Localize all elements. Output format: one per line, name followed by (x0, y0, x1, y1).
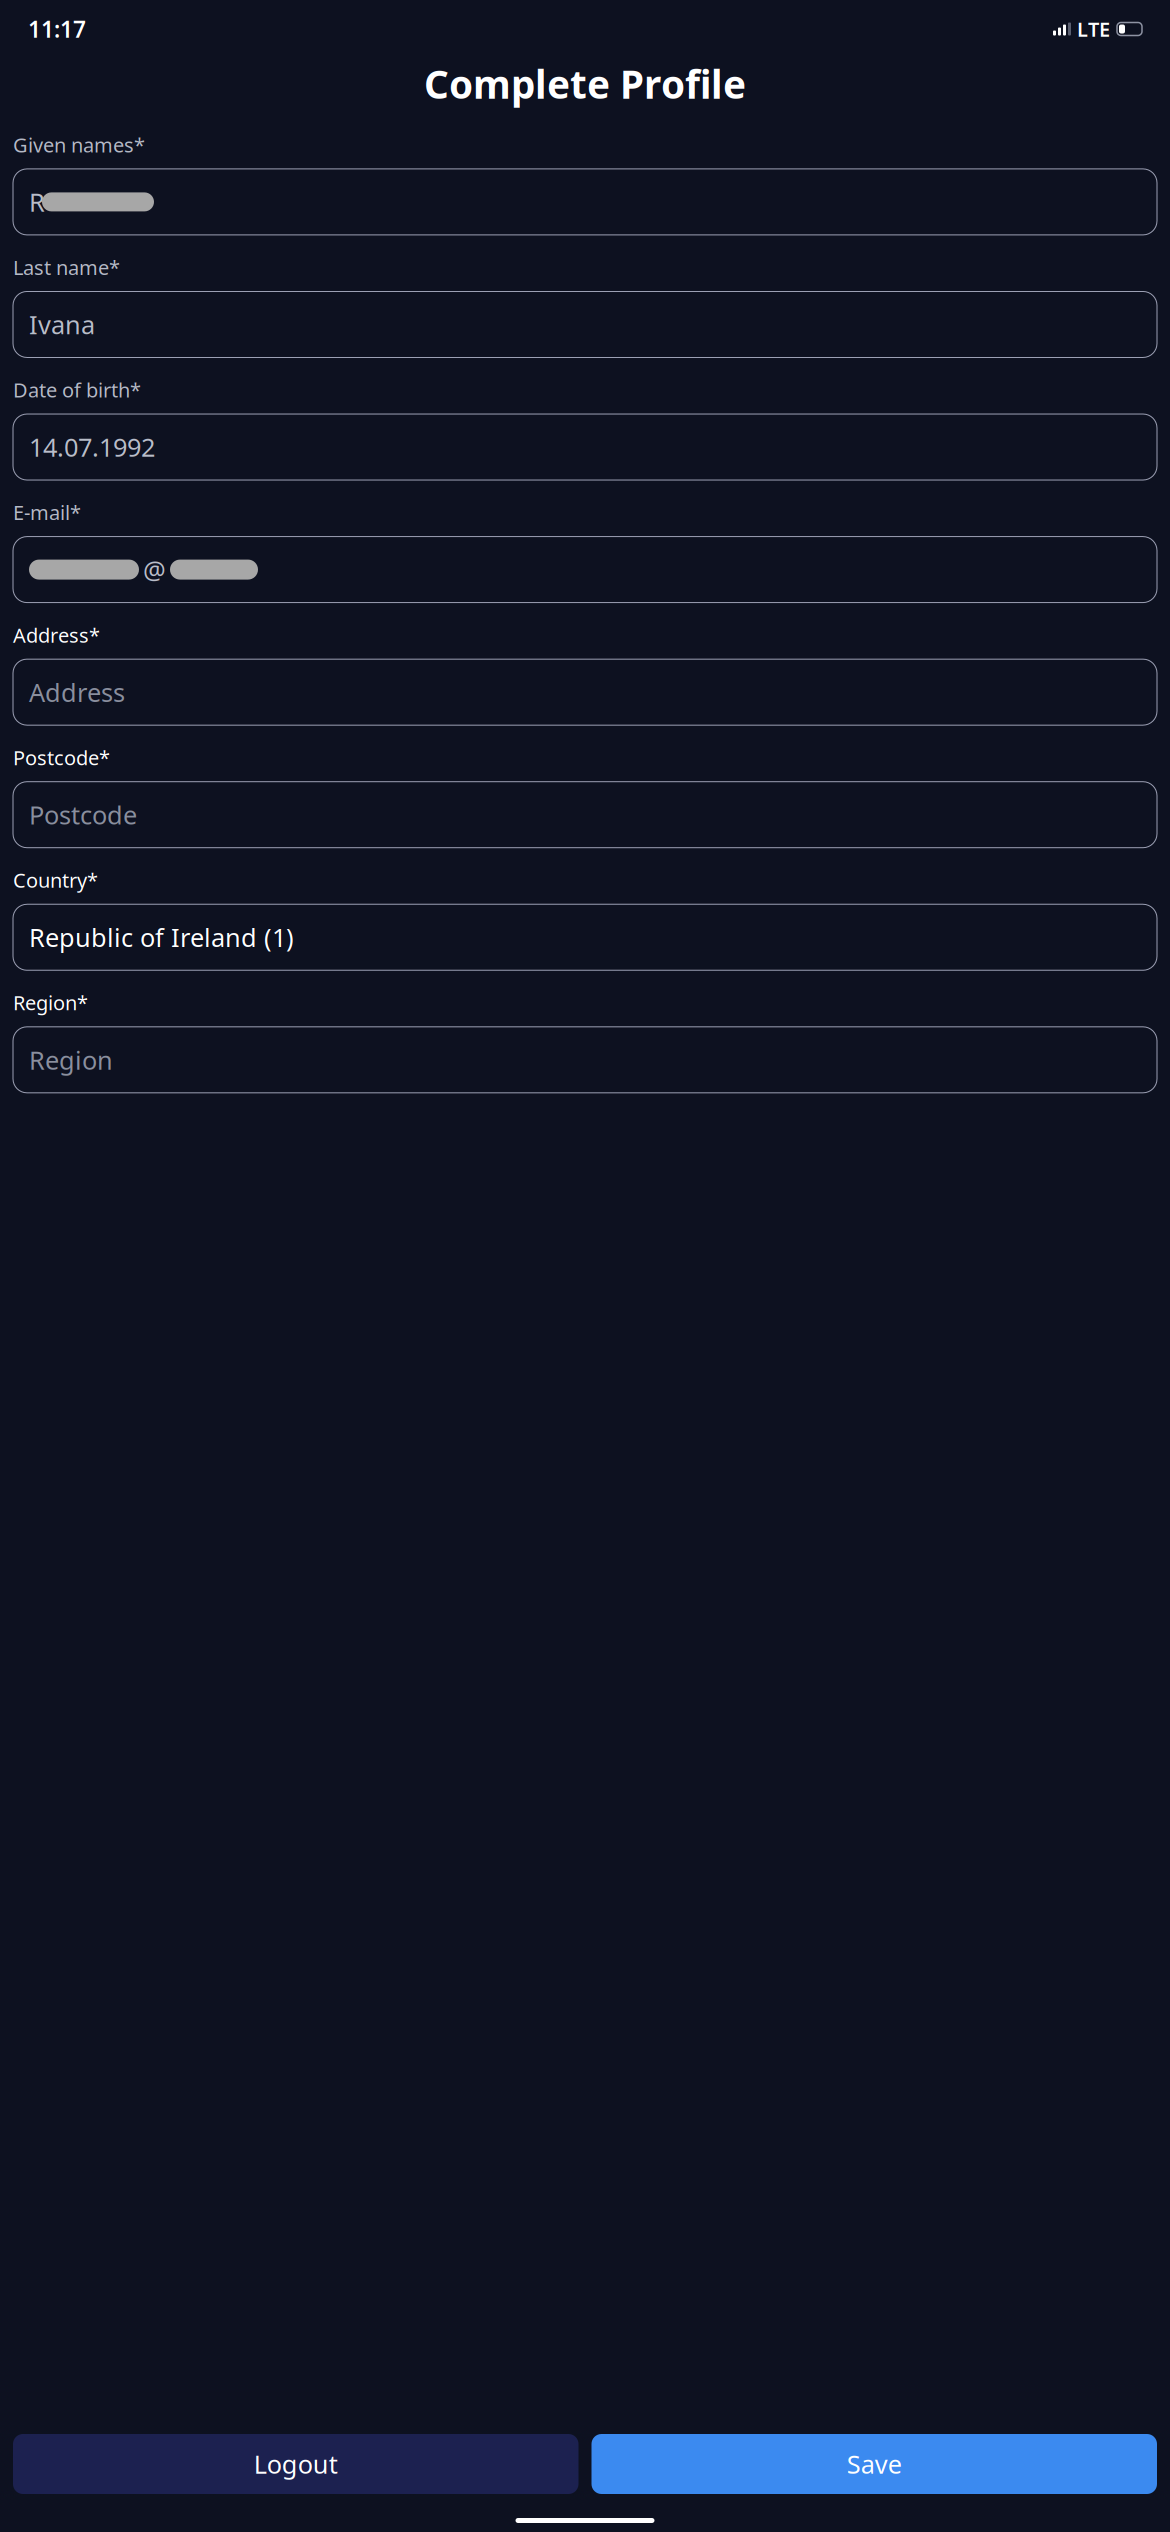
staticText: Save (847, 2447, 902, 2481)
staticText: 11:17 (28, 14, 86, 44)
staticText: LTE (1077, 16, 1110, 42)
staticText: 14.07.1992 (29, 430, 155, 464)
button[interactable]: R (13, 169, 1157, 235)
button[interactable]: Region (13, 1027, 1157, 1093)
staticText: Date of birth* (13, 376, 141, 403)
staticText: Ivana (29, 308, 95, 341)
staticText: Postcode* (13, 744, 110, 771)
staticText: E-mail* (13, 499, 81, 526)
button[interactable]: Postcode (13, 782, 1157, 848)
staticText: Given names* (13, 131, 145, 158)
staticText: @ (143, 553, 166, 586)
staticText: Region* (13, 989, 88, 1016)
staticText: Postcode (29, 798, 137, 831)
staticText: Region (29, 1043, 113, 1077)
button[interactable]: Logout (13, 2434, 578, 2494)
staticText: Complete Profile (424, 58, 746, 109)
button[interactable]: Republic of Ireland (1) (13, 904, 1157, 970)
button[interactable]: 14.07.1992 (13, 414, 1157, 480)
staticText: Last name* (13, 254, 120, 280)
staticText: Country* (13, 867, 98, 893)
button[interactable]: Address (13, 659, 1157, 725)
button[interactable]: Ivana (13, 291, 1157, 357)
staticText: R (29, 185, 45, 219)
button[interactable]: Save (591, 2434, 1157, 2494)
staticText: Address (29, 675, 125, 709)
button[interactable]: @ (13, 537, 1157, 603)
staticText: Logout (254, 2447, 338, 2481)
staticText: Republic of Ireland (1) (29, 920, 294, 954)
staticText: Address* (13, 622, 100, 648)
